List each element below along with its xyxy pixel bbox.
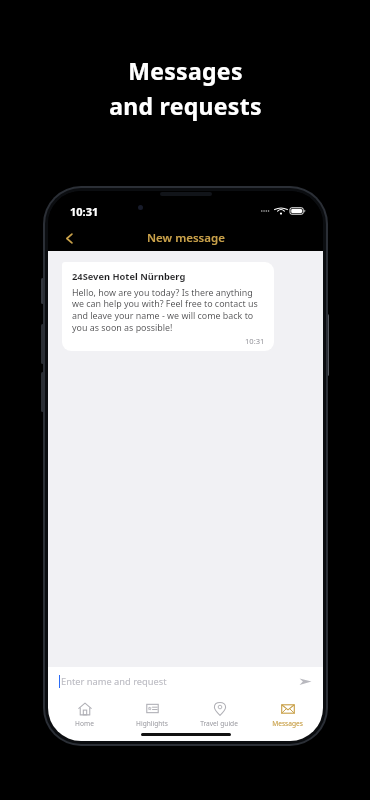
button[interactable]: Home bbox=[53, 699, 115, 730]
button[interactable]: Messages bbox=[256, 699, 318, 730]
staticText: 10:31 bbox=[70, 204, 99, 219]
button[interactable]: Travel guide bbox=[188, 699, 250, 730]
button[interactable]: Send bbox=[295, 671, 315, 691]
staticText: Travel guide bbox=[200, 719, 238, 728]
staticText: Enter name and request bbox=[61, 675, 167, 688]
staticText: Home bbox=[75, 719, 94, 728]
staticText: and requests bbox=[109, 90, 262, 121]
staticText: Messages bbox=[128, 55, 243, 86]
staticText: Highlights bbox=[136, 719, 168, 728]
staticText: 24Seven Hotel Nürnberg bbox=[72, 270, 186, 283]
staticText: New message bbox=[147, 230, 225, 246]
button[interactable]: Enter name and request bbox=[48, 667, 323, 695]
staticText: Hello, how are you today? Is there anyth… bbox=[72, 286, 265, 334]
button[interactable]: 24Seven Hotel Nürnberg bbox=[62, 262, 274, 351]
staticText: 10:31 bbox=[245, 336, 265, 346]
button[interactable]: Highlights bbox=[121, 699, 183, 730]
staticText: Messages bbox=[272, 719, 303, 728]
button[interactable]: Back bbox=[56, 225, 82, 251]
